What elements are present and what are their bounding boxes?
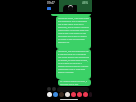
button[interactable]: App xyxy=(53,92,58,97)
button[interactable]: App xyxy=(83,92,88,97)
staticText: So I think it works for both, a message … xyxy=(60,80,89,85)
button[interactable]: App xyxy=(89,92,92,97)
button[interactable]: Attach file xyxy=(47,87,51,91)
button[interactable] xyxy=(51,14,91,16)
button[interactable]: App xyxy=(59,92,64,97)
button[interactable]: So I think it works for both, a message … xyxy=(58,79,91,86)
button[interactable]: Maybe so, but the telephone call is stil… xyxy=(56,49,91,79)
staticText: Maybe for trade, I did even make the tel… xyxy=(58,17,89,44)
button[interactable]: App xyxy=(47,92,52,97)
button[interactable]: Camera xyxy=(52,87,56,91)
staticText: Maybe so, but the telephone call is stil… xyxy=(58,50,89,74)
button[interactable]: App xyxy=(77,92,82,97)
button[interactable]: Maybe for trade, I did even make the tel… xyxy=(56,16,91,49)
button[interactable]: App xyxy=(65,92,70,97)
staticText: 46% xyxy=(82,1,88,5)
staticText: 09:47 xyxy=(47,1,55,5)
button[interactable]: App xyxy=(71,92,76,97)
